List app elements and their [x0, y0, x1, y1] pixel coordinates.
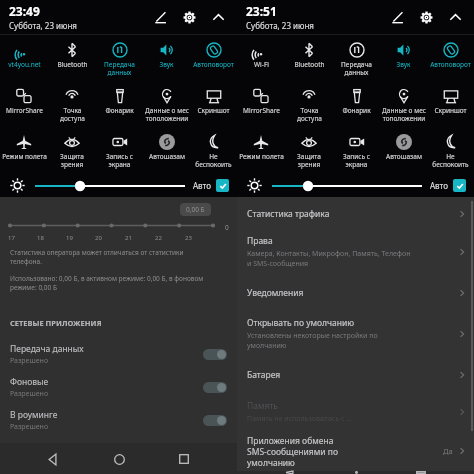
staticText: 22 — [155, 234, 185, 242]
button[interactable]: Фонарик — [96, 86, 143, 128]
button[interactable]: Права — [237, 229, 474, 275]
button[interactable]: Запись с экрана — [96, 132, 143, 174]
staticText: СЕТЕВЫЕ ПРИЛОЖЕНИЯ — [10, 318, 102, 328]
staticText: Звук — [396, 60, 411, 69]
staticText: Автошазам — [386, 152, 422, 161]
button[interactable]: MirrorShare — [237, 86, 285, 128]
button[interactable]: Auto brightness — [453, 179, 466, 192]
staticText: vt4you.net — [8, 60, 41, 69]
button[interactable]: Recents — [408, 471, 434, 474]
button[interactable]: Автоповорот — [427, 40, 474, 82]
button[interactable]: Settings — [415, 6, 437, 28]
button[interactable]: Settings — [178, 6, 200, 28]
button[interactable]: Brightness — [35, 178, 185, 194]
button[interactable]: Edit — [149, 6, 171, 28]
button[interactable]: Home — [343, 471, 369, 474]
button[interactable]: Brightness — [272, 178, 422, 194]
staticText: Не беспокоить — [432, 152, 469, 169]
button[interactable]: Edit — [386, 6, 408, 28]
button[interactable]: Защита зрения — [285, 132, 333, 174]
staticText: Автошазам — [149, 152, 185, 161]
button[interactable]: Батарея — [237, 357, 474, 393]
button[interactable]: Back — [40, 446, 66, 472]
button[interactable]: Память — [237, 393, 474, 431]
button[interactable]: Фоновые — [0, 371, 237, 404]
button[interactable]: Открывать по умолчанию — [237, 311, 474, 357]
button[interactable]: Wi-Fi — [237, 40, 285, 82]
button[interactable]: Точка доступа — [285, 86, 333, 128]
button[interactable]: Скриншот — [190, 86, 237, 128]
staticText: Разрешено — [10, 422, 49, 432]
button[interactable]: Точка доступа — [48, 86, 96, 128]
staticText: Фонарик — [342, 106, 371, 115]
staticText: Авто — [430, 180, 448, 191]
button[interactable]: Передача данных — [96, 40, 143, 82]
button[interactable]: Режим полета — [0, 132, 48, 174]
staticText: MirrorShare — [243, 106, 280, 115]
staticText: Статистика трафика — [247, 208, 330, 220]
button[interactable]: Звук — [380, 40, 427, 82]
staticText: Передача данных — [104, 60, 135, 77]
staticText: Данные о мес тоположении — [382, 106, 426, 123]
staticText: Статистика оператора может отличаться от… — [10, 248, 184, 266]
staticText: Передача данных — [341, 60, 372, 77]
button[interactable]: Передача данных — [333, 40, 380, 82]
button[interactable]: Данные о мес тоположении — [143, 86, 190, 128]
button[interactable]: Auto brightness — [216, 179, 229, 192]
staticText: Точка доступа — [60, 106, 85, 123]
button[interactable]: vt4you.net — [0, 40, 48, 82]
button[interactable]: Режим полета — [237, 132, 285, 174]
staticText: Защита зрения — [60, 152, 84, 169]
button[interactable]: Уведомления — [237, 275, 474, 311]
button[interactable]: Фонарик — [333, 86, 380, 128]
button[interactable]: Данные о мес тоположении — [380, 86, 427, 128]
button[interactable]: Статистика трафика — [237, 199, 474, 229]
staticText: Права — [247, 235, 273, 247]
staticText: Не беспокоить — [195, 152, 232, 169]
staticText: Батарея — [247, 369, 281, 381]
button[interactable]: Приложения обмена SMS-сообщениями по умо… — [237, 431, 474, 471]
staticText: Режим полета — [2, 152, 47, 161]
button[interactable]: MirrorShare — [0, 86, 48, 128]
button[interactable]: Не беспокоить — [427, 132, 474, 174]
staticText: Bluetooth — [57, 60, 88, 69]
button[interactable]: Звук — [143, 40, 190, 82]
button[interactable]: Запись с экрана — [333, 132, 380, 174]
staticText: Использовано: 0,00 Б, в активном режиме:… — [10, 274, 204, 292]
staticText: Режим полета — [239, 152, 284, 161]
staticText: 23:49 — [9, 3, 40, 19]
button[interactable]: Collapse — [444, 6, 466, 28]
staticText: Суббота, 23 июня — [246, 20, 314, 31]
staticText: Разрешено — [10, 389, 49, 399]
staticText: Приложения обмена SMS-сообщениями по умо… — [247, 435, 443, 468]
button[interactable]: Защита зрения — [48, 132, 96, 174]
staticText: Открывать по умолчанию — [247, 317, 355, 329]
staticText: Защита зрения — [297, 152, 321, 169]
button[interactable]: Передача данных — [0, 338, 237, 371]
staticText: 23 — [185, 234, 215, 242]
button[interactable]: Не беспокоить — [190, 132, 237, 174]
button[interactable]: Back — [277, 471, 303, 474]
button[interactable]: Автоповорот — [190, 40, 237, 82]
button[interactable]: Автошазам — [143, 132, 190, 174]
button[interactable]: Автошазам — [380, 132, 427, 174]
button[interactable]: Collapse — [207, 6, 229, 28]
staticText: Фонарик — [105, 106, 134, 115]
staticText: 19 — [66, 234, 95, 242]
button[interactable]: Bluetooth — [285, 40, 333, 82]
button[interactable]: Recents — [171, 446, 197, 472]
staticText: 18 — [37, 234, 66, 242]
button[interactable]: В роуминге — [0, 404, 237, 437]
staticText: Камера, Контакты, Микрофон, Память, Теле… — [247, 249, 411, 269]
staticText: Уведомления — [247, 287, 304, 299]
staticText: 23:51 — [246, 3, 277, 19]
button[interactable]: Скриншот — [427, 86, 474, 128]
staticText: Суббота, 23 июня — [9, 20, 77, 31]
staticText: Автоповорот — [430, 60, 471, 69]
button[interactable]: Home — [106, 446, 132, 472]
staticText: Передача данных — [10, 343, 84, 355]
staticText: Звук — [159, 60, 174, 69]
staticText: Запись с экрана — [343, 152, 370, 169]
button[interactable]: Bluetooth — [48, 40, 96, 82]
staticText: Точка доступа — [297, 106, 322, 123]
